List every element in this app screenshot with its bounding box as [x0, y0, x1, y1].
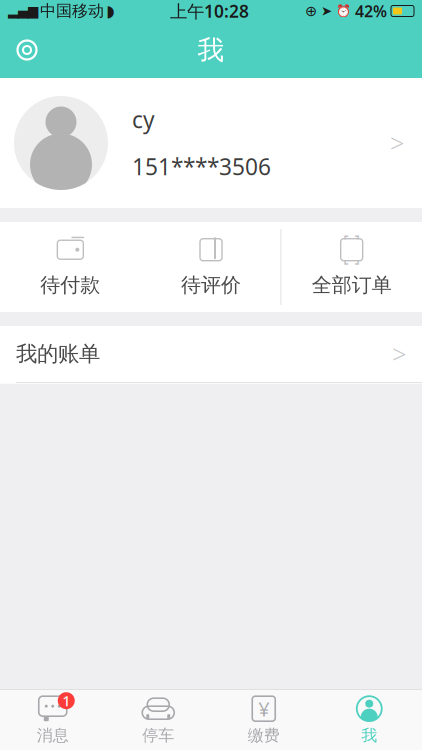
staticText: 上午10:28 — [170, 0, 249, 22]
button[interactable]: 停车 — [105, 692, 211, 748]
staticText: > — [390, 126, 404, 160]
staticText: ◗ — [106, 2, 114, 20]
staticText: 42% — [355, 0, 387, 22]
staticText: ➤ — [321, 3, 332, 18]
button[interactable]: 1 — [0, 692, 105, 748]
staticText: 我的账单 — [16, 341, 100, 367]
staticText: 全部订单 — [312, 273, 392, 297]
button[interactable]: 我 — [316, 692, 422, 748]
button[interactable]: ¥ — [211, 692, 316, 748]
staticText: 中国移动 — [40, 1, 104, 21]
button[interactable]: 待付款 — [0, 222, 141, 312]
staticText: ⌝ — [354, 234, 360, 247]
staticText: 我 — [197, 34, 224, 66]
staticText: 1 — [62, 691, 70, 710]
staticText: ⏰ — [336, 4, 351, 18]
button[interactable]: 待评价 — [141, 222, 281, 312]
staticText: 我 — [361, 726, 377, 745]
button[interactable]: cy — [0, 78, 422, 208]
staticText: ⌞ — [343, 252, 349, 266]
staticText: ¥ — [258, 695, 269, 722]
staticText: ⌟ — [354, 252, 360, 266]
staticText: 151****3506 — [132, 151, 271, 182]
button[interactable]: ⌜ — [281, 222, 422, 312]
staticText: cy — [132, 104, 155, 134]
staticText: 缴费 — [248, 726, 280, 745]
staticText: > — [392, 337, 406, 371]
button[interactable]: 我的账单 — [0, 326, 422, 383]
staticText: ⌜ — [343, 234, 349, 247]
staticText: 待评价 — [181, 273, 241, 297]
staticText: ⊕ — [305, 3, 317, 19]
button[interactable]: 设置 — [4, 27, 50, 73]
staticText: 停车 — [142, 726, 174, 745]
staticText: 待付款 — [40, 273, 100, 297]
staticText: 消息 — [37, 726, 69, 745]
staticText: ▂▄▆ — [8, 3, 38, 18]
